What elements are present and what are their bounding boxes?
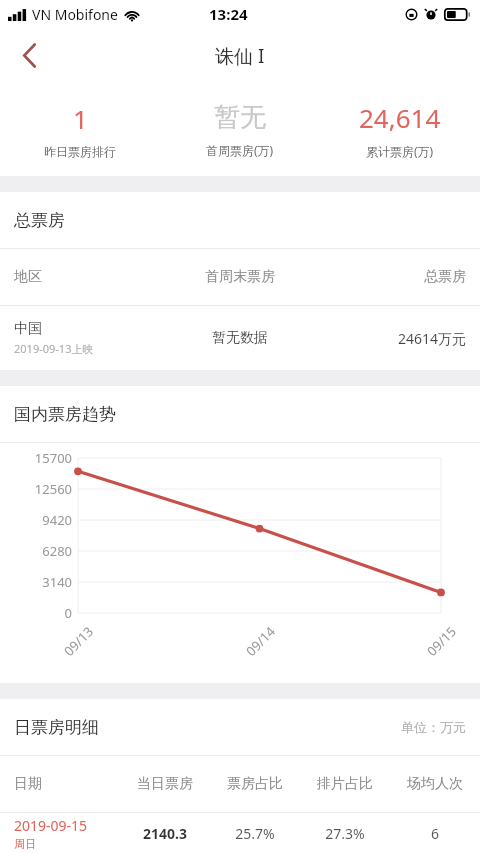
staticText: 12560 bbox=[8, 480, 72, 498]
staticText: 国内票房趋势 bbox=[14, 404, 116, 425]
staticText: 09/15 bbox=[423, 622, 460, 660]
staticText: 3140 bbox=[8, 573, 72, 591]
staticText: 诛仙 I bbox=[215, 43, 265, 69]
button[interactable]: 1 bbox=[0, 101, 160, 159]
staticText: 2019-09-13上映 bbox=[14, 341, 94, 356]
staticText: 周日 bbox=[14, 837, 36, 851]
staticText: 25.7% bbox=[210, 824, 300, 843]
staticText: 9420 bbox=[8, 511, 72, 529]
staticText: 2019-09-15 bbox=[14, 816, 88, 835]
staticText: 日票房明细 bbox=[14, 717, 99, 738]
button[interactable]: 中国 bbox=[0, 306, 480, 370]
staticText: 排片占比 bbox=[300, 775, 390, 793]
staticText: 09/13 bbox=[60, 622, 97, 660]
staticText: 昨日票房排行 bbox=[44, 144, 116, 159]
button[interactable]: 暂无 bbox=[160, 101, 320, 158]
staticText: VN Mobifone bbox=[32, 5, 118, 24]
staticText: 1 bbox=[73, 101, 88, 136]
staticText: 0 bbox=[8, 604, 72, 622]
staticText: 13:24 bbox=[209, 4, 248, 24]
staticText: 地区 bbox=[14, 268, 160, 286]
staticText: 暂无 bbox=[214, 101, 266, 134]
staticText: 2140.3 bbox=[120, 824, 210, 843]
staticText: 总票房 bbox=[14, 210, 65, 231]
staticText: 24,614 bbox=[359, 100, 441, 135]
staticText: 单位：万元 bbox=[401, 719, 466, 735]
button[interactable]: 2019-09-15 bbox=[0, 813, 480, 853]
staticText: 中国 bbox=[14, 320, 42, 338]
staticText: 15700 bbox=[8, 449, 72, 467]
staticText: 累计票房(万) bbox=[366, 143, 434, 159]
staticText: 6 bbox=[390, 824, 480, 843]
button[interactable]: 24,614 bbox=[320, 100, 480, 159]
button[interactable]: Back bbox=[0, 28, 58, 83]
staticText: 首周票房(万) bbox=[206, 142, 274, 158]
staticText: 首周末票房 bbox=[160, 268, 320, 286]
staticText: 票房占比 bbox=[210, 775, 300, 793]
staticText: 09/14 bbox=[242, 622, 279, 660]
staticText: 6280 bbox=[8, 542, 72, 560]
staticText: 日期 bbox=[14, 775, 120, 793]
staticText: 总票房 bbox=[320, 268, 466, 286]
staticText: 暂无数据 bbox=[160, 329, 320, 347]
staticText: 24614万元 bbox=[320, 329, 466, 348]
staticText: 27.3% bbox=[300, 824, 390, 843]
staticText: 场均人次 bbox=[390, 775, 480, 793]
staticText: 当日票房 bbox=[120, 775, 210, 793]
